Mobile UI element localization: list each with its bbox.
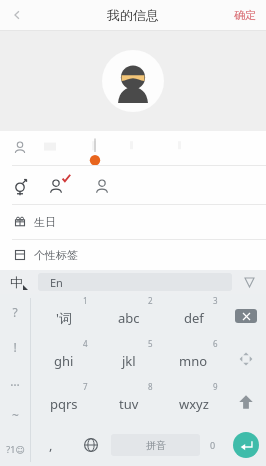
staticText: 4 (83, 338, 88, 349)
staticText: 1 (83, 295, 88, 306)
staticText: wxyz (179, 395, 209, 413)
staticText: '词 (56, 309, 72, 327)
staticText: tuv (119, 395, 139, 413)
button[interactable]: Collapse keyboard (232, 270, 266, 294)
staticText: 7 (83, 381, 88, 392)
button[interactable]: , (31, 423, 71, 466)
button[interactable]: En (38, 273, 232, 291)
staticText: 中 (10, 274, 23, 290)
button[interactable]: … (0, 364, 30, 398)
staticText: ~ (12, 407, 19, 423)
button[interactable]: ! (0, 329, 30, 364)
staticText: 0 (210, 439, 216, 451)
staticText: 拼音 (146, 439, 166, 452)
staticText: … (10, 373, 20, 389)
staticText: ghi (54, 352, 74, 370)
button[interactable]: Avatar (102, 50, 164, 112)
button[interactable]: ?1☺ (0, 432, 30, 466)
staticText: 我的信息 (107, 7, 159, 23)
staticText: 5 (148, 338, 153, 349)
staticText: abc (118, 309, 140, 327)
staticText: 个性标签 (34, 248, 78, 262)
button[interactable]: 个性标签 (0, 240, 266, 270)
button[interactable]: ? (0, 294, 30, 329)
button[interactable]: ~ (0, 398, 30, 432)
button[interactable]: 拼音 (111, 434, 200, 456)
button[interactable]: 7 (31, 380, 96, 423)
button[interactable]: Change language (71, 423, 111, 466)
staticText: 2 (148, 295, 153, 306)
button[interactable]: Shift (226, 380, 266, 423)
button[interactable]: Move cursor (226, 337, 266, 380)
button[interactable]: 1 (31, 294, 96, 337)
staticText: pqrs (50, 395, 78, 413)
button[interactable]: 中 (0, 270, 38, 294)
staticText: 3 (213, 295, 218, 306)
staticText: 9 (213, 381, 218, 392)
button[interactable]: 9 (161, 380, 226, 423)
button[interactable]: Enter (226, 423, 266, 466)
button[interactable]: 5 (96, 337, 161, 380)
button[interactable]: 6 (161, 337, 226, 380)
staticText: 生日 (34, 215, 56, 229)
staticText: mno (179, 352, 208, 370)
staticText: 6 (213, 338, 218, 349)
staticText: ? (12, 304, 18, 320)
button[interactable]: 4 (31, 337, 96, 380)
staticText: ! (13, 339, 17, 355)
staticText: jkl (122, 352, 136, 370)
button[interactable]: Backspace (226, 294, 266, 337)
staticText: def (184, 309, 204, 327)
button[interactable]: Male (42, 166, 88, 204)
staticText: En (50, 275, 63, 290)
button[interactable]: Female (88, 166, 130, 204)
staticText: , (49, 436, 53, 454)
button[interactable]: 2 (96, 294, 161, 337)
button[interactable]: 8 (96, 380, 161, 423)
button[interactable] (0, 131, 266, 165)
button[interactable]: 3 (161, 294, 226, 337)
button[interactable]: 确定 (224, 0, 266, 30)
staticText: ?1☺ (6, 443, 25, 455)
staticText: 8 (148, 381, 153, 392)
staticText: 确定 (234, 8, 256, 22)
button[interactable]: Back (0, 0, 34, 30)
button[interactable]: 生日 (0, 205, 266, 239)
